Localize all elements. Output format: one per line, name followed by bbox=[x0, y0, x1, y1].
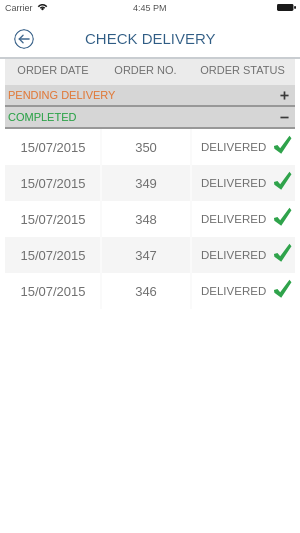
staticText: ORDER NO. bbox=[114, 64, 177, 76]
button[interactable]: Back bbox=[14, 29, 34, 49]
button[interactable]: 15/07/2015 bbox=[5, 165, 295, 201]
button[interactable]: 15/07/2015 bbox=[5, 129, 295, 165]
staticText: Carrier bbox=[5, 3, 33, 13]
staticText: 350 bbox=[135, 140, 157, 155]
staticText: DELIVERED bbox=[201, 177, 267, 190]
staticText: DELIVERED bbox=[201, 141, 267, 154]
button[interactable]: 15/07/2015 bbox=[5, 273, 295, 309]
button[interactable]: 15/07/2015 bbox=[5, 201, 295, 237]
staticText: PENDING DELIVERY bbox=[8, 89, 116, 101]
staticText: ORDER STATUS bbox=[200, 64, 285, 76]
staticText: 15/07/2015 bbox=[20, 176, 86, 191]
staticText: 15/07/2015 bbox=[20, 140, 86, 155]
staticText: COMPLETED bbox=[8, 111, 77, 123]
staticText: CHECK DELIVERY bbox=[85, 30, 216, 47]
staticText: 15/07/2015 bbox=[20, 284, 86, 299]
staticText: 15/07/2015 bbox=[20, 248, 86, 263]
staticText: 15/07/2015 bbox=[20, 212, 86, 227]
staticText: 347 bbox=[135, 248, 157, 263]
staticText: 349 bbox=[135, 176, 157, 191]
staticText: DELIVERED bbox=[201, 249, 267, 262]
staticText: 346 bbox=[135, 284, 157, 299]
button[interactable]: PENDING DELIVERY bbox=[5, 85, 295, 105]
staticText: 348 bbox=[135, 212, 157, 227]
button[interactable]: 15/07/2015 bbox=[5, 237, 295, 273]
staticText: ORDER DATE bbox=[17, 64, 89, 76]
staticText: DELIVERED bbox=[201, 285, 267, 298]
button[interactable]: COMPLETED bbox=[5, 107, 295, 127]
staticText: 4:45 PM bbox=[133, 3, 167, 13]
staticText: DELIVERED bbox=[201, 213, 267, 226]
